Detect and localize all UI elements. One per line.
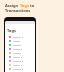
button[interactable] [5,51,35,55]
button[interactable] [5,35,35,39]
button[interactable] [5,47,35,51]
staticText: to [29,3,35,8]
button[interactable] [5,55,35,59]
staticText: Tags [20,3,29,8]
button[interactable] [5,39,35,43]
button[interactable] [5,67,35,71]
staticText: Transactions [5,8,31,13]
button[interactable] [5,63,35,67]
button[interactable] [5,43,35,47]
button[interactable] [5,59,35,63]
staticText: Assign [5,3,20,8]
staticText: Tags [7,28,16,33]
